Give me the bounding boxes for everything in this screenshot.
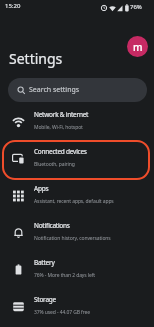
staticText: 76% <box>130 3 142 11</box>
staticText: Notification history, conversations <box>34 235 111 242</box>
staticText: Assistant, recent apps, default apps <box>34 198 114 205</box>
staticText: Battery <box>34 258 55 267</box>
button[interactable]: Battery <box>0 254 154 291</box>
button[interactable]: Apps <box>0 180 154 217</box>
staticText: Network & internet <box>34 110 89 119</box>
staticText: 76% - More than 2 days left <box>34 272 96 279</box>
button[interactable]: Search settings <box>8 78 147 102</box>
staticText: Storage <box>34 295 56 304</box>
button[interactable]: m <box>127 36 148 57</box>
staticText: Apps <box>34 184 49 193</box>
button[interactable]: Network & internet <box>0 106 154 143</box>
staticText: 15:20 <box>5 2 21 10</box>
staticText: Connected devices <box>34 147 87 156</box>
staticText: Search settings <box>29 85 80 95</box>
staticText: 37% used - 44.07 GB free <box>34 309 90 316</box>
staticText: Notifications <box>34 221 70 230</box>
staticText: m <box>133 40 143 54</box>
button[interactable]: Notifications <box>0 217 154 254</box>
staticText: Mobile, Wi-Fi, hotspot <box>34 124 83 131</box>
staticText: Settings <box>9 49 63 68</box>
button[interactable]: Storage <box>0 291 154 327</box>
button[interactable]: Connected devices <box>0 143 154 180</box>
staticText: Bluetooth, pairing <box>34 161 75 168</box>
